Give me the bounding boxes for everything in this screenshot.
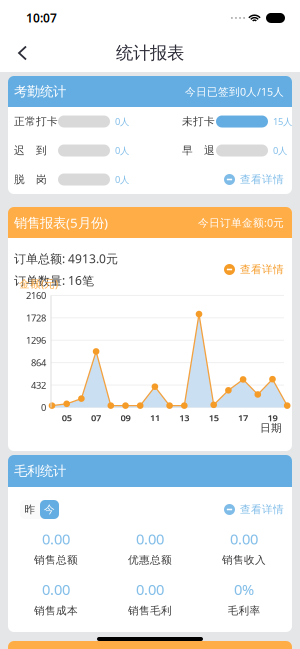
staticText: 销售成本	[34, 604, 78, 617]
staticText: 查看详情	[240, 173, 284, 186]
staticText: 0人	[115, 144, 129, 157]
button[interactable]: 今	[40, 500, 59, 519]
staticText: 0%	[234, 580, 254, 599]
staticText: 15人	[273, 115, 292, 128]
staticText: 查看详情	[240, 503, 284, 516]
staticText: 今日已签到0人/15人	[185, 84, 284, 99]
staticText: 09	[120, 411, 130, 424]
staticText: 统计报表	[116, 42, 184, 64]
button[interactable]: 查看详情	[224, 263, 284, 276]
staticText: 金额(元)	[19, 276, 58, 291]
staticText: 销售报表(5月份)	[14, 214, 108, 231]
staticText: 0人	[115, 115, 129, 128]
staticText: 13	[179, 411, 189, 424]
staticText: 优惠总额	[128, 553, 172, 567]
staticText: 考勤统计	[14, 83, 66, 100]
staticText: 早 退	[182, 144, 215, 157]
staticText: 毛利率	[227, 604, 260, 617]
staticText: 脱 岗	[14, 173, 47, 186]
staticText: 17	[238, 411, 248, 424]
button[interactable]: 昨	[20, 500, 40, 519]
staticText: 1296	[26, 334, 46, 346]
staticText: 今日订单金额:0元	[198, 215, 284, 230]
staticText: 销售收入	[222, 553, 266, 567]
staticText: 2160	[26, 289, 46, 302]
staticText: 日期	[260, 421, 282, 434]
staticText: 0.00	[136, 529, 164, 548]
staticText: 864	[31, 356, 46, 369]
staticText: 432	[31, 379, 46, 391]
button[interactable]: 查看详情	[224, 503, 284, 516]
staticText: 正常打卡	[14, 115, 58, 128]
staticText: 昨	[24, 503, 35, 516]
button[interactable]: Back	[0, 36, 38, 69]
staticText: 0.00	[42, 529, 70, 548]
staticText: 05	[62, 411, 72, 424]
staticText: 0人	[273, 144, 287, 157]
staticText: 销售毛利	[128, 604, 172, 617]
staticText: 0.00	[42, 580, 70, 599]
staticText: 0.00	[136, 580, 164, 599]
staticText: 1728	[26, 312, 46, 324]
staticText: 11	[150, 411, 160, 424]
staticText: 迟 到	[14, 144, 47, 157]
staticText: 0	[41, 401, 46, 414]
staticText: 0.00	[230, 529, 258, 548]
staticText: 今	[44, 503, 55, 516]
staticText: 19	[267, 411, 277, 424]
staticText: 未打卡	[182, 115, 215, 128]
staticText: 10:07	[26, 10, 57, 26]
button[interactable]: 查看详情	[224, 173, 284, 186]
staticText: 毛利统计	[14, 463, 66, 479]
staticText: 07	[91, 411, 101, 424]
staticText: 查看详情	[240, 263, 284, 276]
staticText: 0人	[115, 173, 129, 186]
staticText: 订单数量: 16笔	[14, 272, 94, 288]
staticText: 订单总额: 4913.0元	[14, 251, 118, 266]
staticText: 销售总额	[34, 553, 78, 567]
staticText: 15	[209, 411, 219, 424]
